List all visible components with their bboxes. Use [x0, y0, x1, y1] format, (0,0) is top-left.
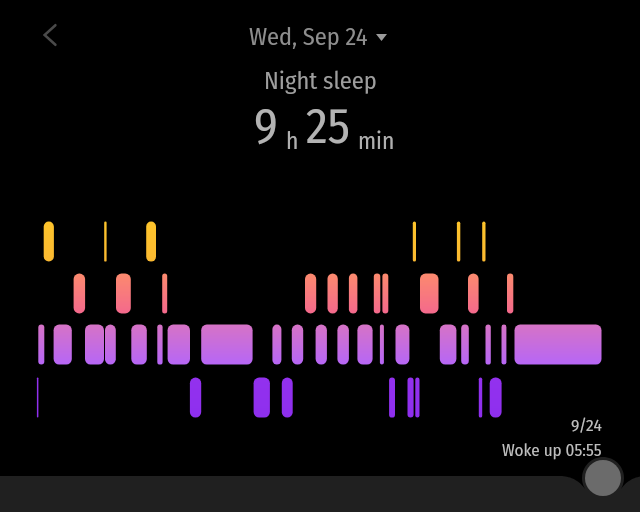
staticText: h: [286, 127, 299, 155]
staticText: Wed, Sep 24: [249, 22, 368, 51]
staticText: 25: [306, 97, 351, 156]
staticText: 9/24: [571, 415, 602, 436]
button[interactable]: Wed, Sep 24: [249, 22, 387, 51]
staticText: min: [358, 127, 395, 155]
staticText: Night sleep: [264, 66, 377, 95]
button[interactable]: Add sleep record: [585, 460, 621, 496]
staticText: 9: [254, 97, 278, 156]
staticText: Woke up 05:55: [502, 440, 602, 460]
button[interactable]: Back: [25, 11, 73, 59]
